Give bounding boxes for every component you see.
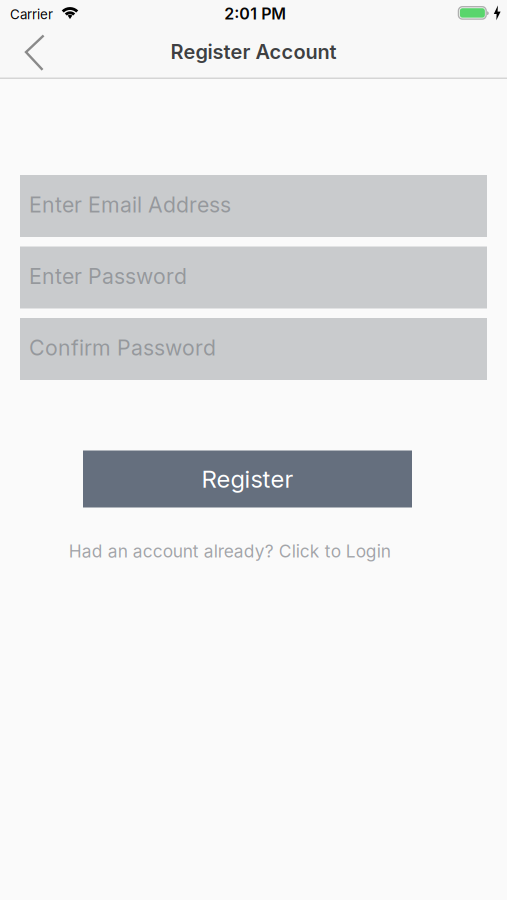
button[interactable]: Confirm Password	[20, 318, 487, 380]
button[interactable]: Enter Password	[20, 246, 487, 308]
button[interactable]: Back	[0, 27, 60, 77]
button[interactable]: Register	[83, 450, 412, 507]
staticText: Confirm Password	[29, 335, 216, 360]
staticText: Enter Password	[29, 264, 187, 289]
staticText: Carrier	[10, 6, 53, 22]
staticText: 2:01 PM	[224, 4, 286, 23]
staticText: Had an account already? Click to Login	[69, 541, 391, 561]
staticText: Register	[201, 465, 293, 493]
button[interactable]: Had an account already? Click to Login	[69, 541, 391, 561]
button[interactable]: Enter Email Address	[20, 175, 487, 237]
staticText: Enter Email Address	[29, 192, 231, 217]
staticText: Register Account	[170, 40, 336, 63]
